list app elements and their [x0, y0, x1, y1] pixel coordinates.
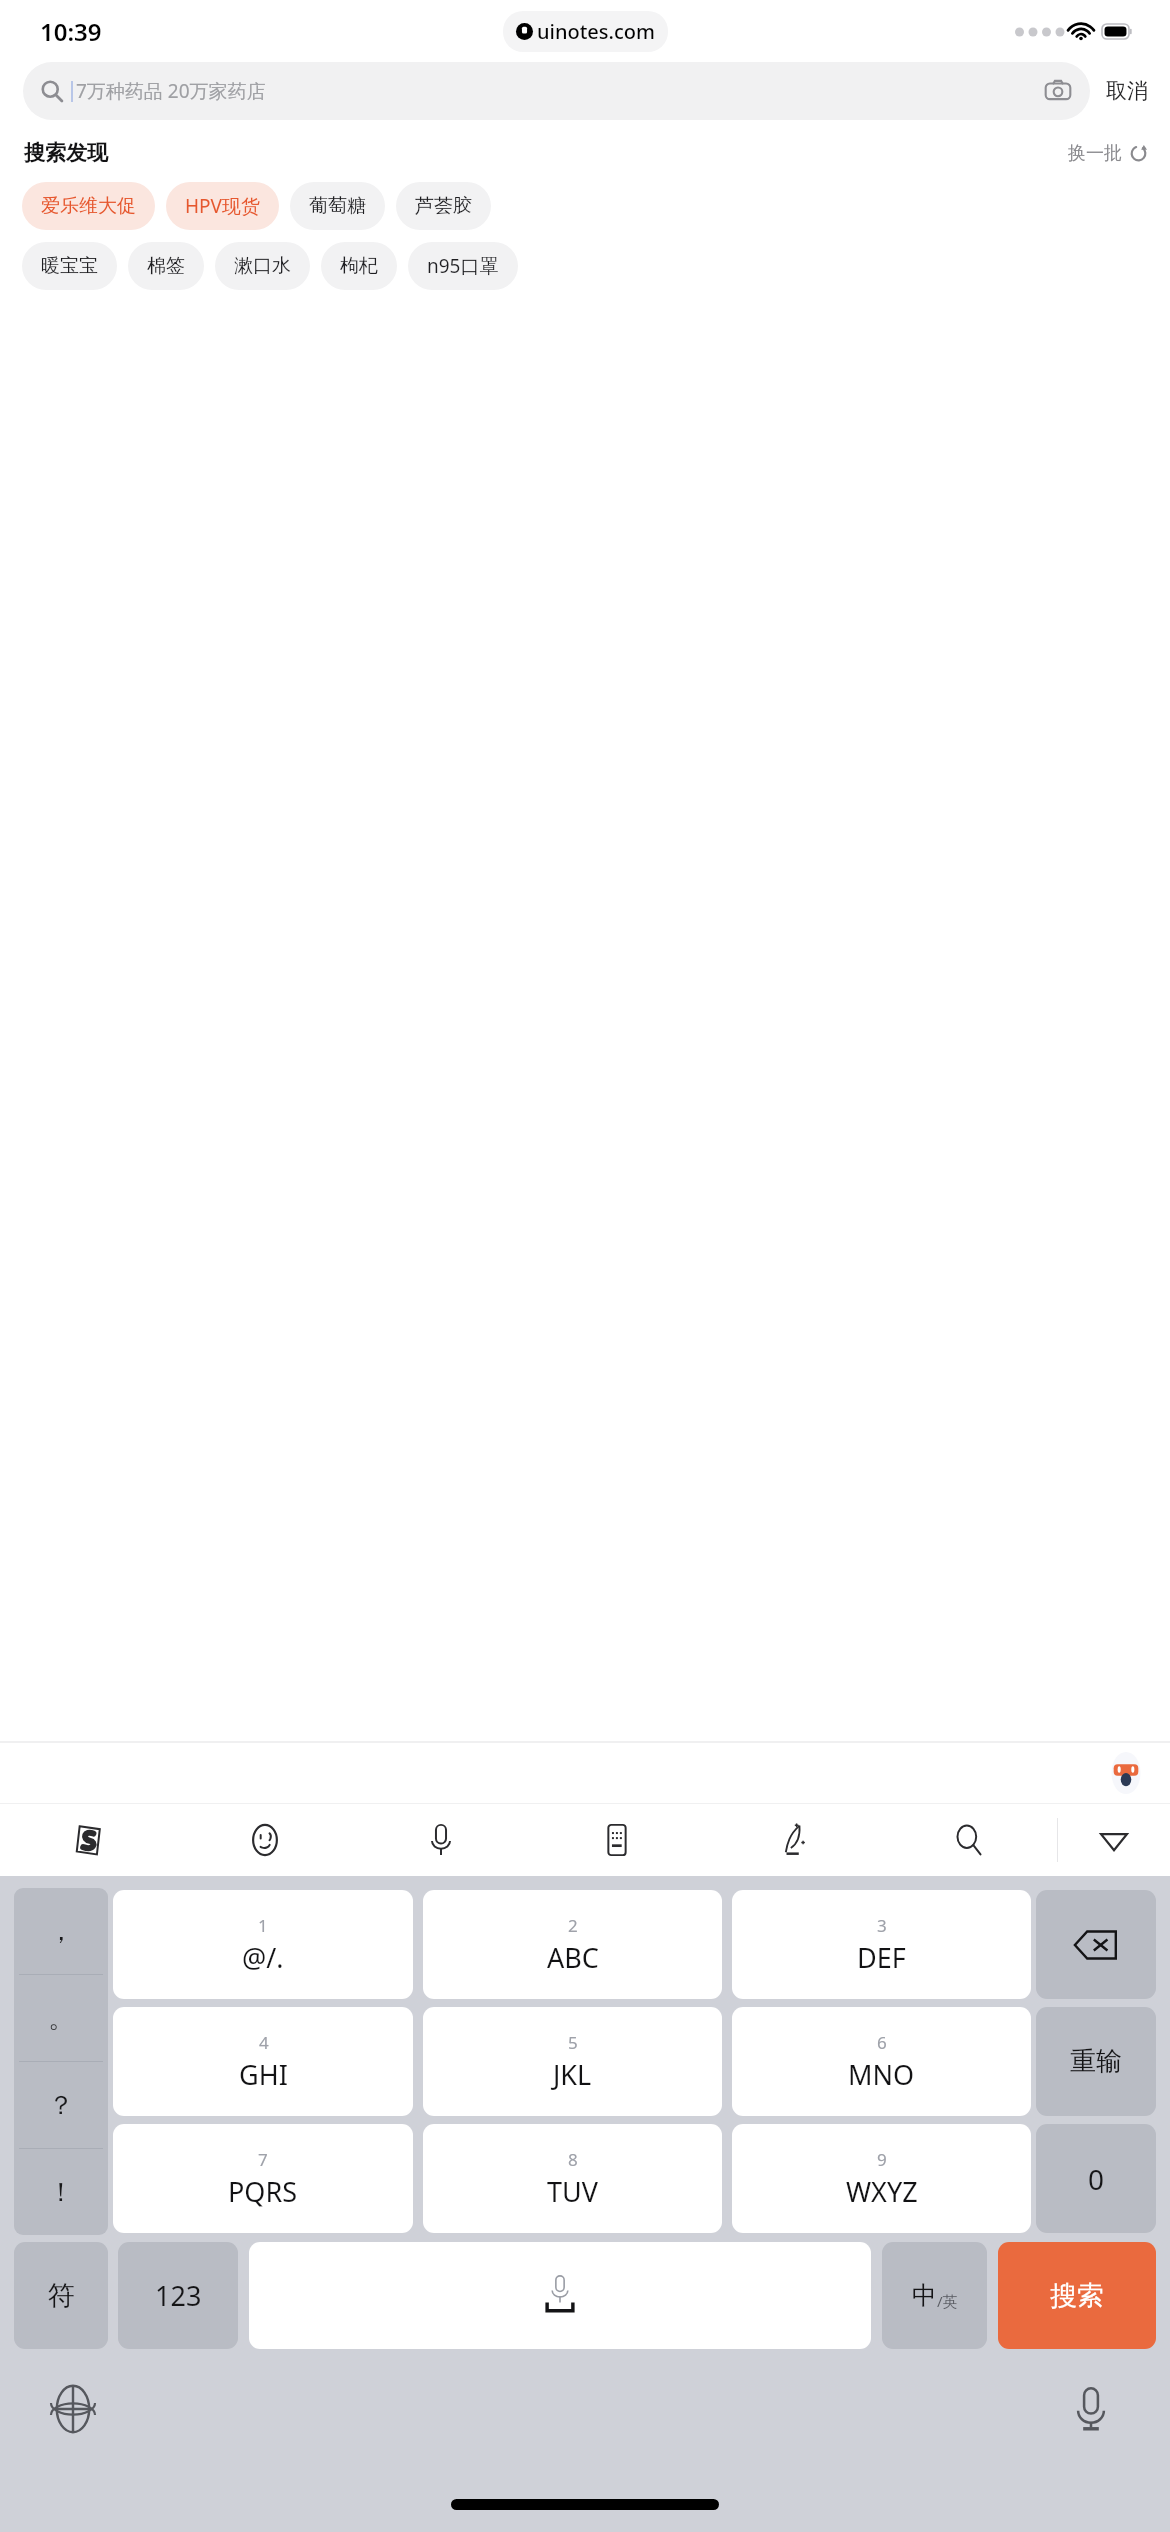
staticText: GHI — [239, 2056, 288, 2093]
button[interactable]: n95口罩 — [408, 242, 518, 290]
button[interactable]: 9 — [732, 2124, 1031, 2233]
staticText: MNO — [848, 2056, 915, 2093]
button[interactable]: 123 — [118, 2242, 238, 2349]
staticText: 6 — [877, 2031, 887, 2054]
staticText: @/. — [242, 1939, 284, 1976]
button[interactable]: 7 — [113, 2124, 413, 2233]
button[interactable]: Camera search — [1044, 77, 1072, 105]
staticText: n95口罩 — [427, 253, 499, 279]
button[interactable]: 。 — [14, 1975, 108, 2061]
button[interactable]: Space — [249, 2242, 871, 2349]
button[interactable]: Switch language — [42, 2378, 104, 2440]
button[interactable]: 0 — [1036, 2124, 1156, 2233]
button[interactable]: Voice input — [353, 1804, 529, 1876]
button[interactable]: 搜索 — [998, 2242, 1156, 2349]
button[interactable]: Voice input — [1060, 2378, 1122, 2440]
staticText: 4 — [259, 2031, 269, 2054]
button[interactable]: 5 — [423, 2007, 722, 2116]
button[interactable]: 4 — [113, 2007, 413, 2116]
button[interactable]: 7万种药品 20万家药店 — [23, 62, 1090, 120]
button[interactable]: 棉签 — [128, 242, 204, 290]
staticText: 8 — [568, 2148, 578, 2171]
button[interactable]: 1 — [113, 1890, 413, 1999]
staticText: DEF — [857, 1939, 906, 1976]
staticText: ， — [48, 1915, 74, 1948]
staticText: 9 — [877, 2148, 887, 2171]
button[interactable]: 芦荟胶 — [396, 182, 491, 230]
button[interactable]: 符 — [14, 2242, 108, 2349]
staticText: ？ — [48, 2089, 74, 2122]
button[interactable]: 3 — [732, 1890, 1031, 1999]
staticText: WXYZ — [846, 2173, 918, 2210]
staticText: 7万种药品 20万家药店 — [76, 78, 266, 104]
button[interactable]: Hide keyboard — [1058, 1804, 1170, 1876]
staticText: 换一批 — [1068, 142, 1122, 165]
staticText: 0 — [1088, 2160, 1105, 2198]
staticText: 123 — [155, 2277, 202, 2314]
button[interactable]: ， — [14, 1888, 108, 1974]
staticText: PQRS — [228, 2173, 298, 2210]
button[interactable]: 枸杞 — [321, 242, 397, 290]
button[interactable]: HPV现货 — [166, 182, 279, 230]
staticText: 。 — [48, 2002, 74, 2035]
staticText: 暖宝宝 — [41, 254, 98, 278]
button[interactable]: Emoji — [177, 1804, 353, 1876]
staticText: 取消 — [1106, 78, 1148, 104]
staticText: 漱口水 — [234, 254, 291, 278]
staticText: 中 — [912, 2280, 937, 2311]
staticText: ！ — [48, 2176, 74, 2209]
button[interactable]: 6 — [732, 2007, 1031, 2116]
staticText: ABC — [547, 1939, 599, 1976]
staticText: /英 — [937, 2291, 958, 2311]
button[interactable]: Keyboard layout — [529, 1804, 705, 1876]
button[interactable]: Delete — [1036, 1890, 1156, 1999]
staticText: 3 — [877, 1914, 887, 1937]
button[interactable]: 2 — [423, 1890, 722, 1999]
staticText: 枸杞 — [340, 254, 378, 278]
button[interactable]: Search — [881, 1804, 1057, 1876]
staticText: 重输 — [1070, 2045, 1122, 2078]
staticText: 10:39 — [40, 15, 102, 48]
staticText: 芦荟胶 — [415, 194, 472, 218]
button[interactable]: 葡萄糖 — [290, 182, 385, 230]
staticText: 1 — [258, 1914, 268, 1937]
staticText: 符 — [48, 2279, 75, 2313]
staticText: TUV — [547, 2173, 598, 2210]
button[interactable]: Sogou — [0, 1804, 177, 1876]
button[interactable]: 8 — [423, 2124, 722, 2233]
staticText: 5 — [568, 2031, 578, 2054]
staticText: HPV现货 — [185, 193, 260, 219]
button[interactable]: 重输 — [1036, 2007, 1156, 2116]
button[interactable]: 取消 — [1090, 78, 1150, 104]
staticText: 棉签 — [147, 254, 185, 278]
button[interactable]: 中 — [882, 2242, 987, 2349]
button[interactable]: ？ — [14, 2062, 108, 2148]
staticText: 葡萄糖 — [309, 194, 366, 218]
staticText: 搜索 — [1050, 2279, 1104, 2313]
staticText: 搜索发现 — [24, 140, 108, 166]
button[interactable]: 漱口水 — [215, 242, 310, 290]
button[interactable]: 换一批 — [1068, 142, 1148, 165]
staticText: 2 — [568, 1914, 578, 1937]
button[interactable]: Handwriting — [705, 1804, 881, 1876]
button[interactable]: 爱乐维大促 — [22, 182, 155, 230]
staticText: JKL — [553, 2056, 592, 2093]
staticText: 爱乐维大促 — [41, 194, 136, 218]
button[interactable]: ！ — [14, 2149, 108, 2235]
button[interactable]: 暖宝宝 — [22, 242, 117, 290]
staticText: uinotes.com — [537, 18, 655, 45]
staticText: 7 — [258, 2148, 268, 2171]
